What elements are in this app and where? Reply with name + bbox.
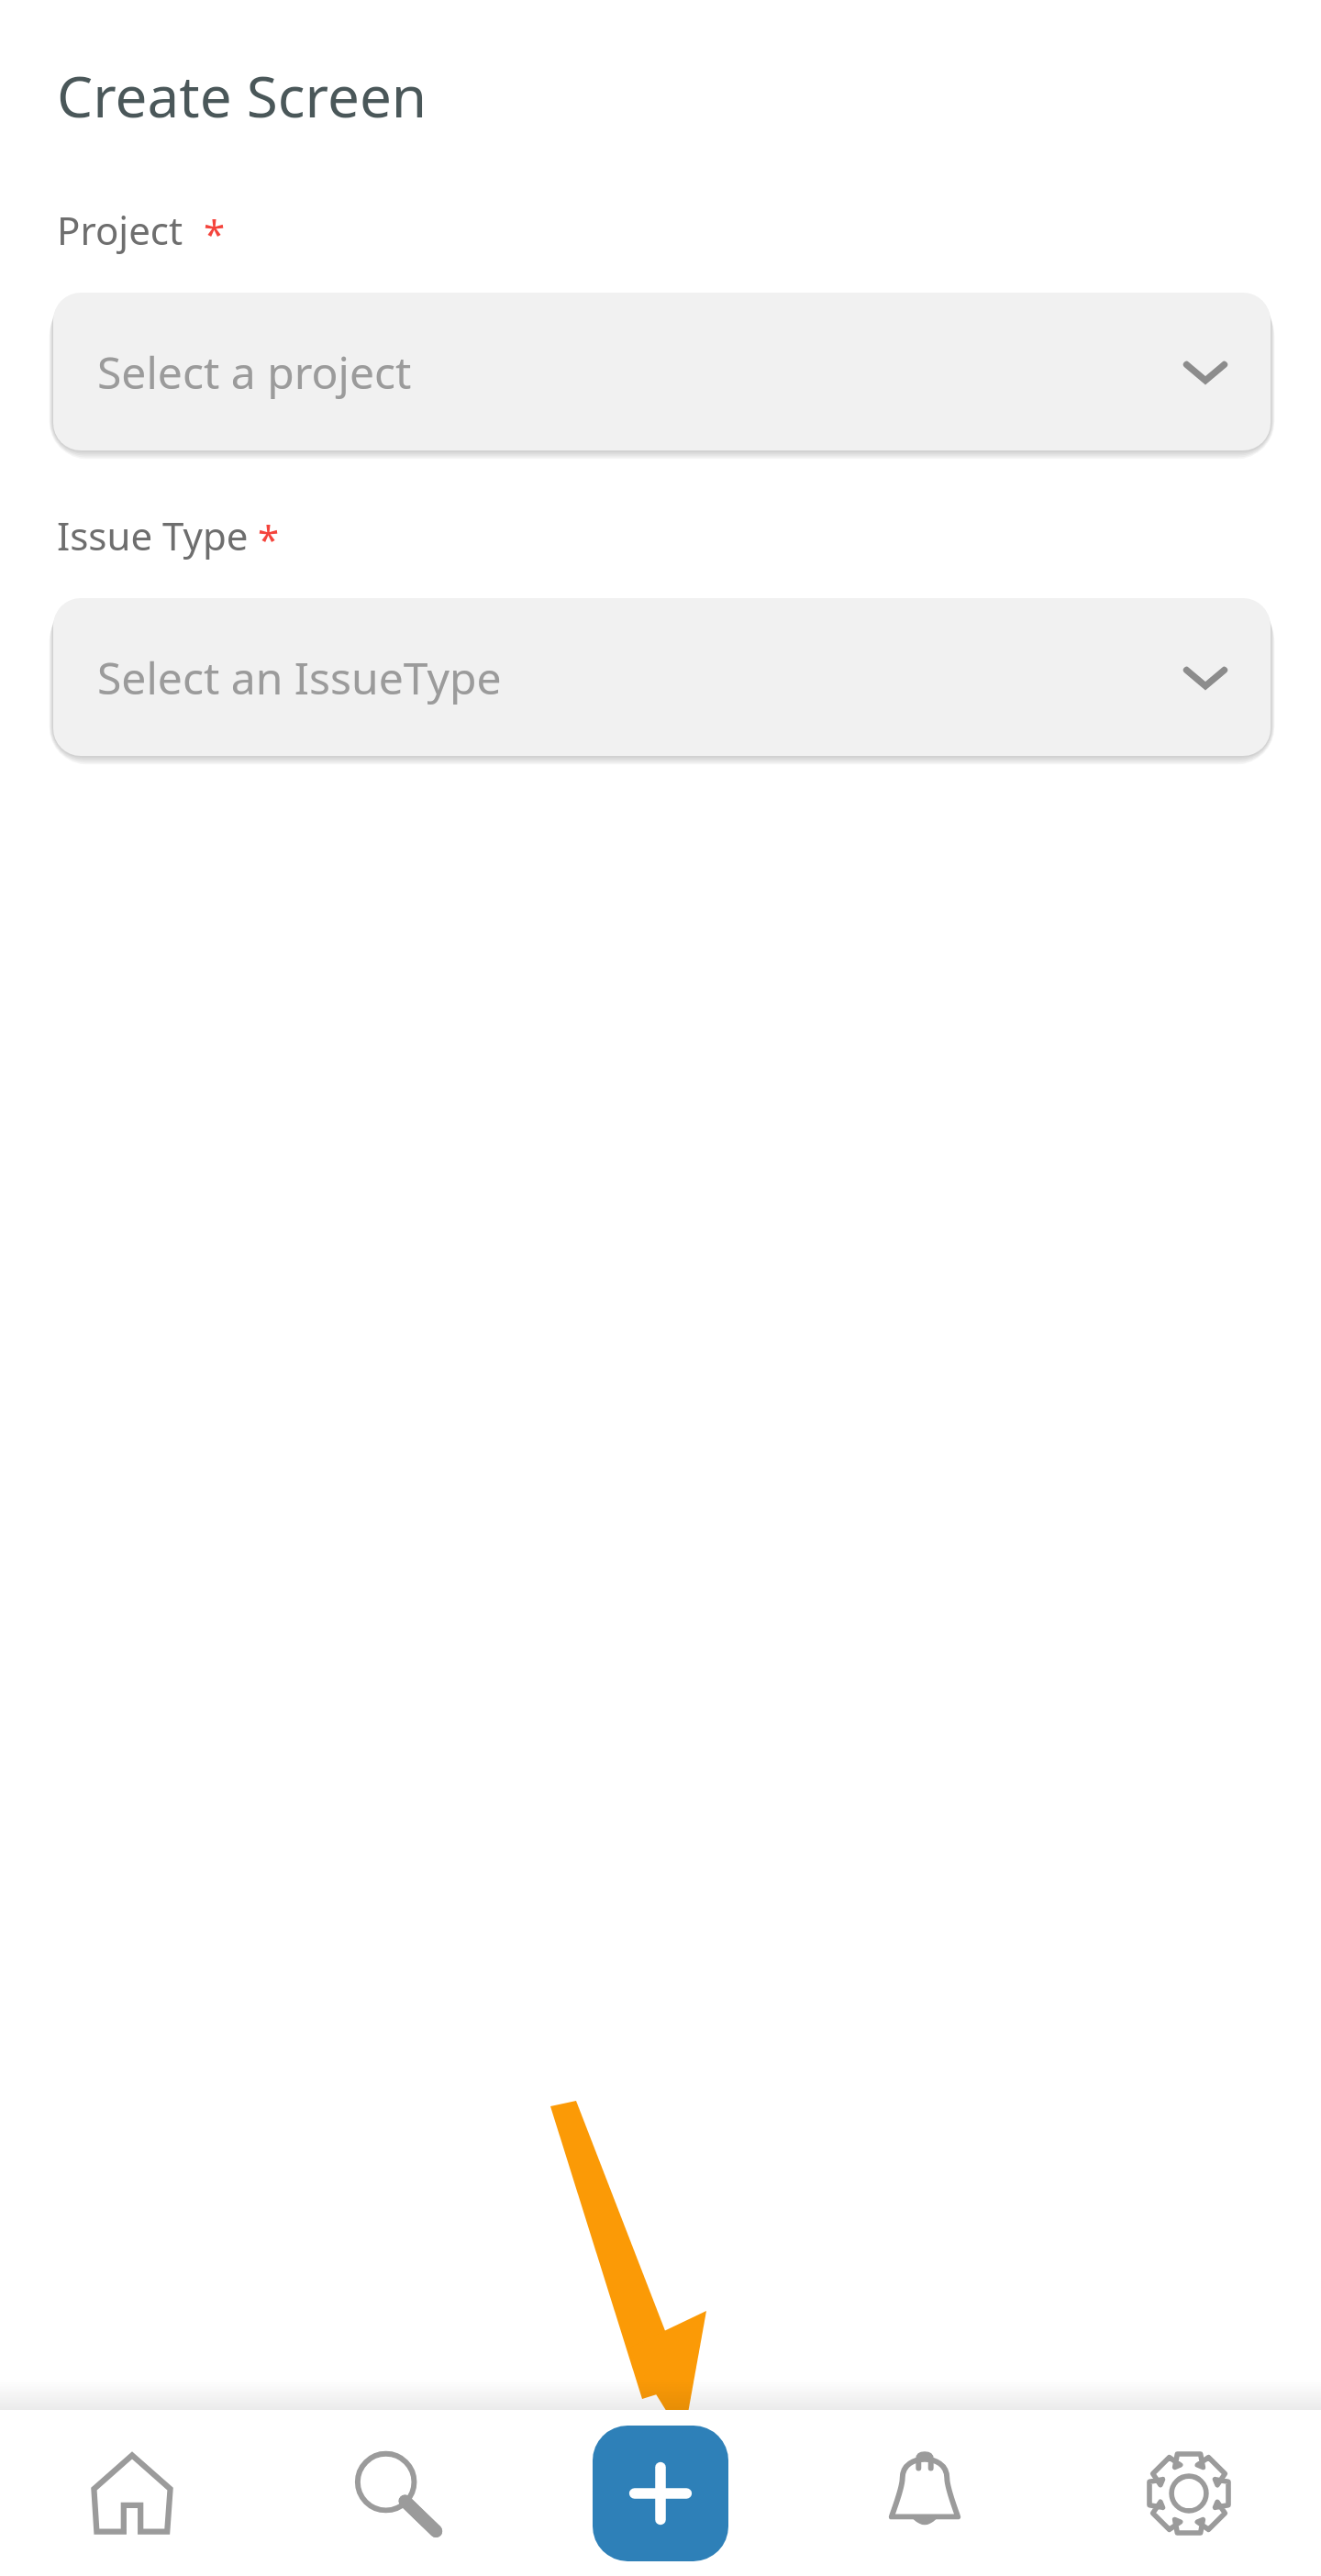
staticText: Create Screen [57, 57, 427, 134]
button[interactable]: Select a project [53, 293, 1271, 450]
button[interactable]: Home [0, 2410, 264, 2576]
staticText: Issue Type [57, 509, 249, 561]
staticText: Select a project [97, 342, 1181, 402]
staticText: * [258, 513, 280, 565]
button[interactable]: Create [593, 2426, 728, 2561]
button[interactable]: Settings [1057, 2410, 1321, 2576]
button[interactable]: Search [264, 2410, 528, 2576]
staticText: Project [57, 204, 183, 256]
button[interactable]: Notifications [793, 2410, 1057, 2576]
staticText: * [204, 207, 226, 260]
button[interactable]: Select an IssueType [53, 598, 1271, 756]
button[interactable]: Create [528, 2410, 793, 2576]
staticText: Select an IssueType [97, 648, 1181, 707]
